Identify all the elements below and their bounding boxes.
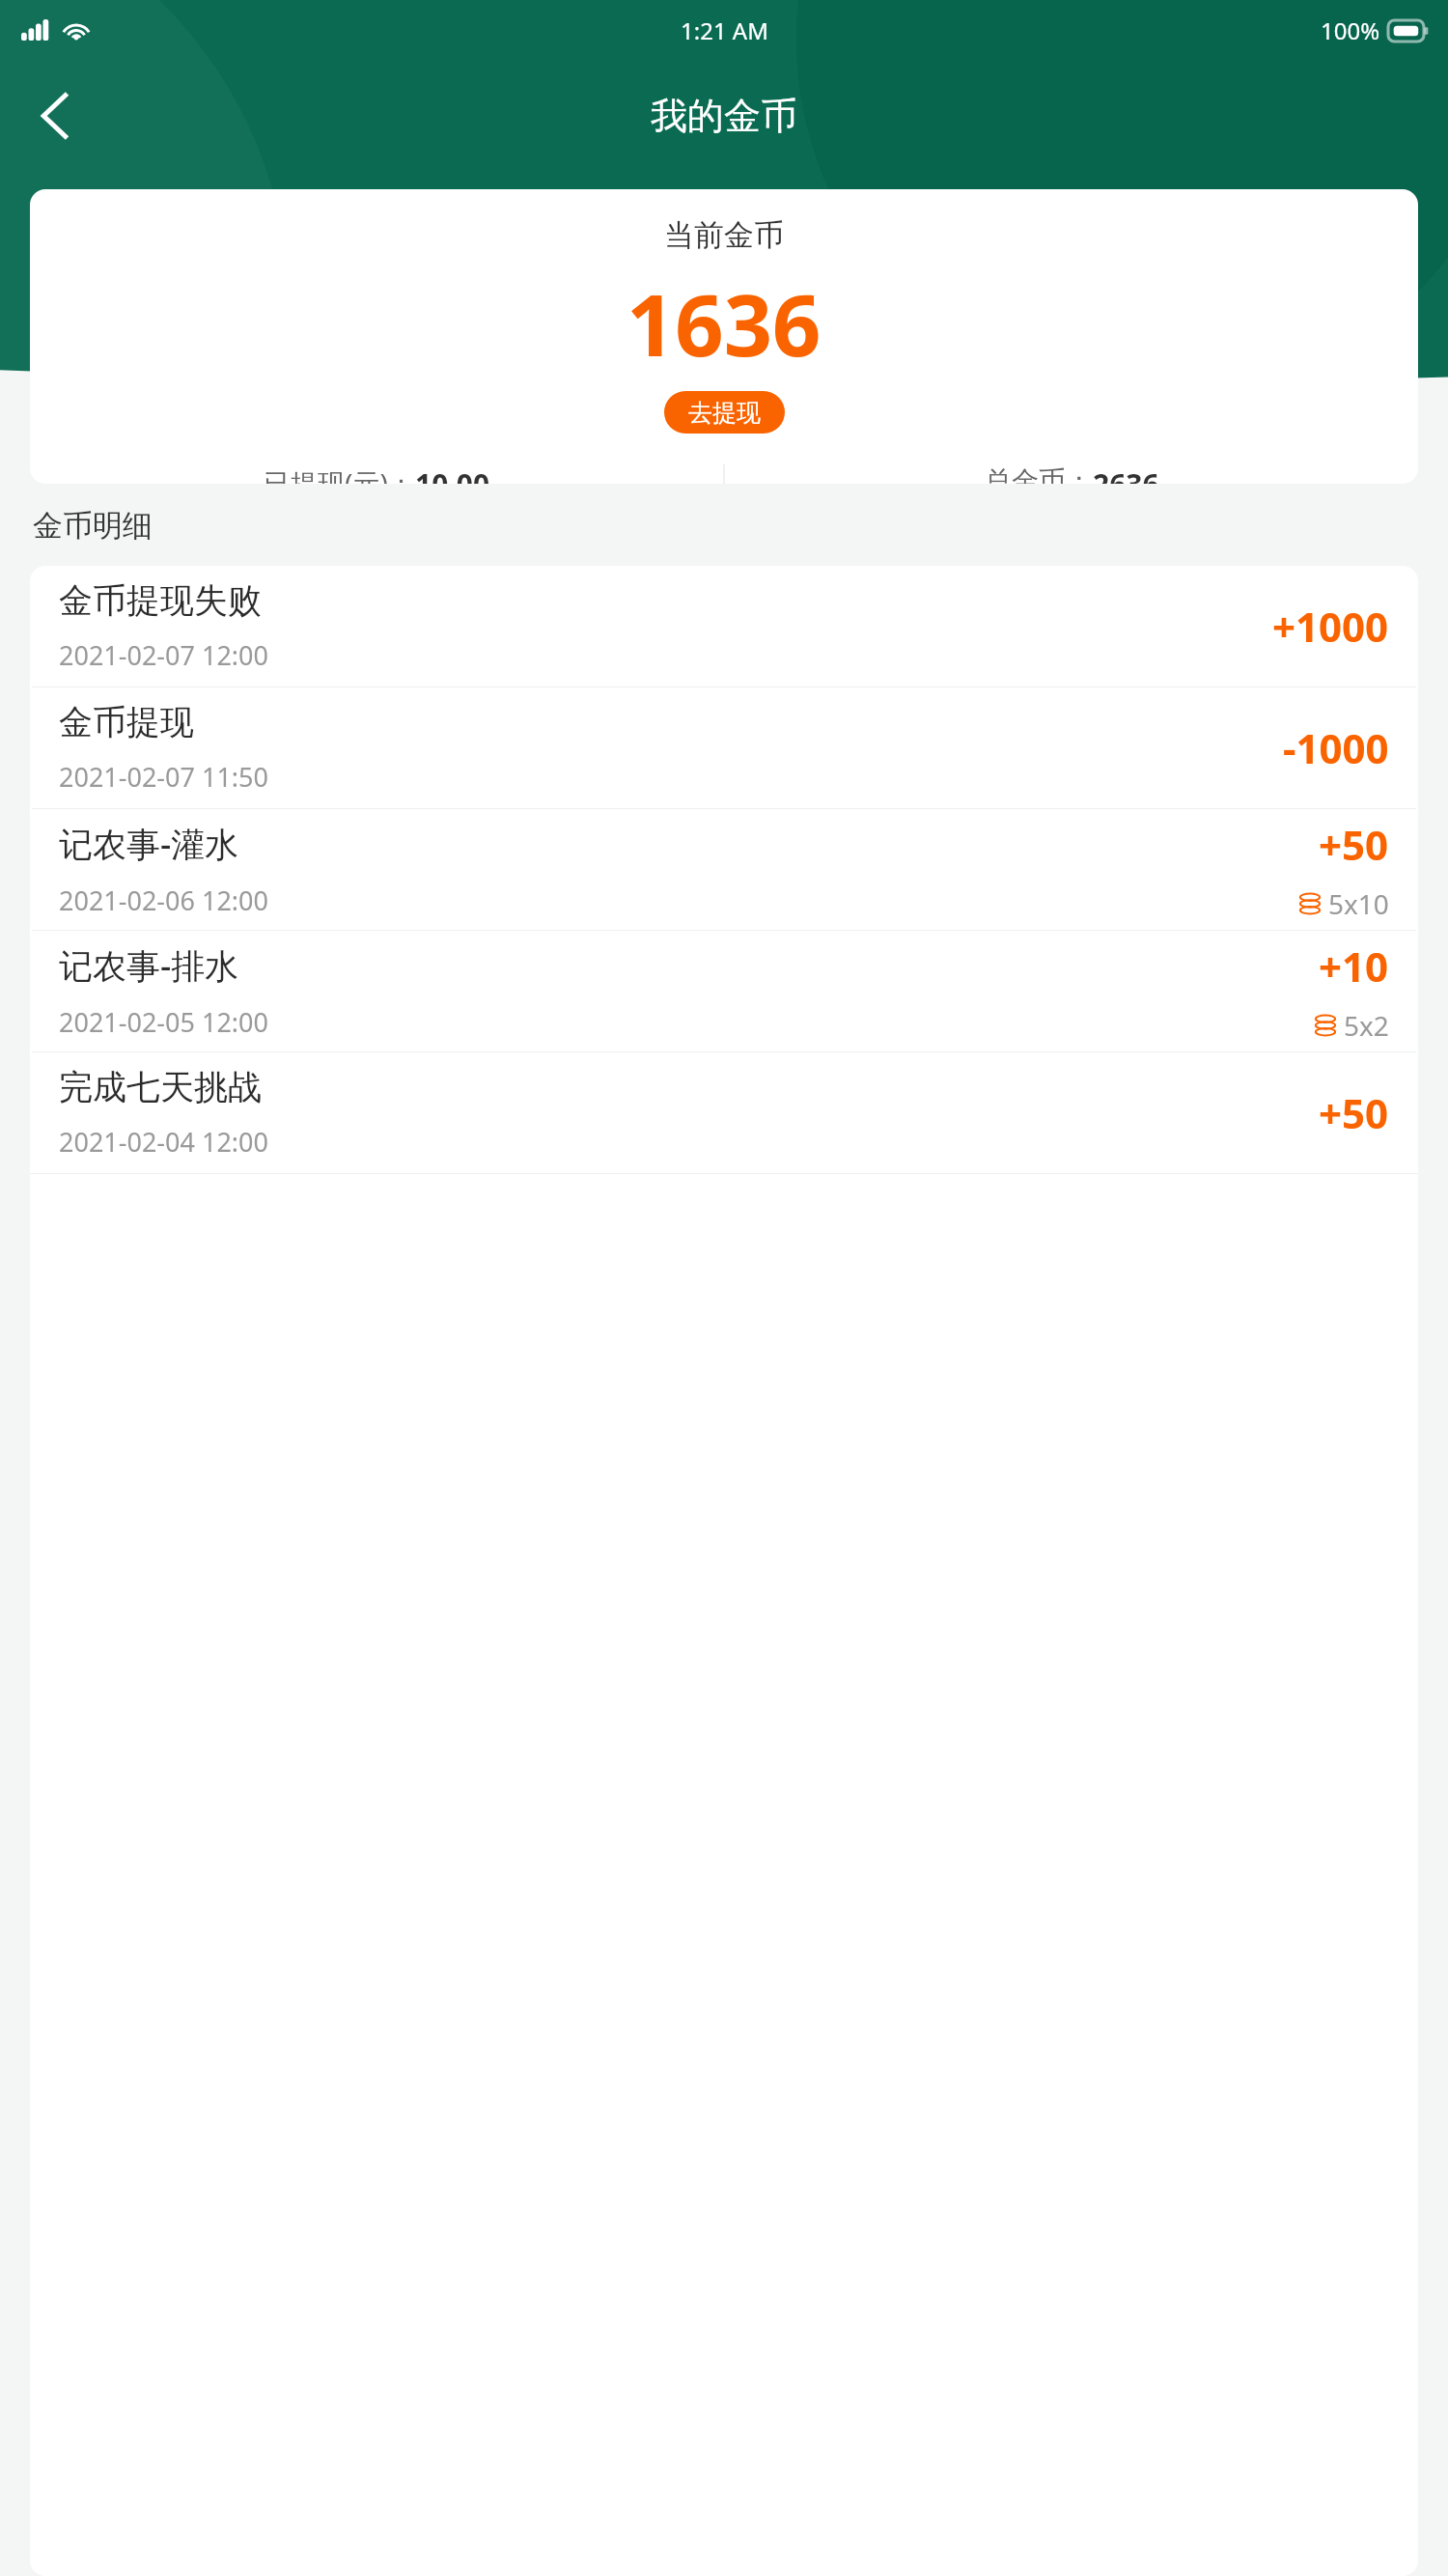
staticText: 2021-02-05 12:00 — [59, 1004, 268, 1040]
staticText: +1000 — [1272, 599, 1389, 654]
staticText: 1636 — [627, 266, 821, 381]
staticText: 2636 — [1093, 464, 1159, 484]
staticText: 记农事-排水 — [59, 942, 239, 989]
staticText: 2021-02-06 12:00 — [59, 882, 268, 918]
staticText: 1:21 AM — [681, 14, 768, 46]
staticText: 2021-02-04 12:00 — [59, 1124, 268, 1160]
staticText: -1000 — [1283, 720, 1389, 775]
staticText: 5x2 — [1344, 1007, 1389, 1044]
button[interactable]: 记农事-排水 — [30, 931, 1418, 1051]
button[interactable]: Back — [17, 77, 95, 154]
button[interactable]: 完成七天挑战 — [30, 1052, 1418, 1173]
staticText: +10 — [1319, 938, 1389, 994]
button[interactable]: 金币提现 — [30, 687, 1418, 808]
staticText: 去提现 — [688, 398, 761, 428]
staticText: 总金币： — [985, 464, 1093, 484]
staticText: +50 — [1319, 817, 1389, 872]
staticText: 2021-02-07 11:50 — [59, 759, 268, 795]
staticText: 100% — [1321, 14, 1380, 46]
staticText: 5x10 — [1328, 885, 1389, 922]
button[interactable]: 去提现 — [664, 391, 785, 434]
button[interactable]: 记农事-灌水 — [30, 809, 1418, 930]
staticText: 2021-02-07 12:00 — [59, 637, 268, 673]
staticText: +50 — [1319, 1085, 1389, 1140]
staticText: 金币提现 — [59, 701, 194, 743]
staticText: 10.00 — [415, 464, 490, 484]
staticText: 金币提现失败 — [59, 579, 262, 622]
staticText: 已提现(元)： — [264, 464, 415, 484]
staticText: 我的金币 — [651, 93, 797, 139]
button[interactable]: 金币提现失败 — [30, 566, 1418, 686]
staticText: 记农事-灌水 — [59, 821, 239, 867]
staticText: 完成七天挑战 — [59, 1066, 262, 1108]
staticText: 当前金币 — [664, 216, 784, 254]
staticText: 金币明细 — [33, 507, 153, 545]
